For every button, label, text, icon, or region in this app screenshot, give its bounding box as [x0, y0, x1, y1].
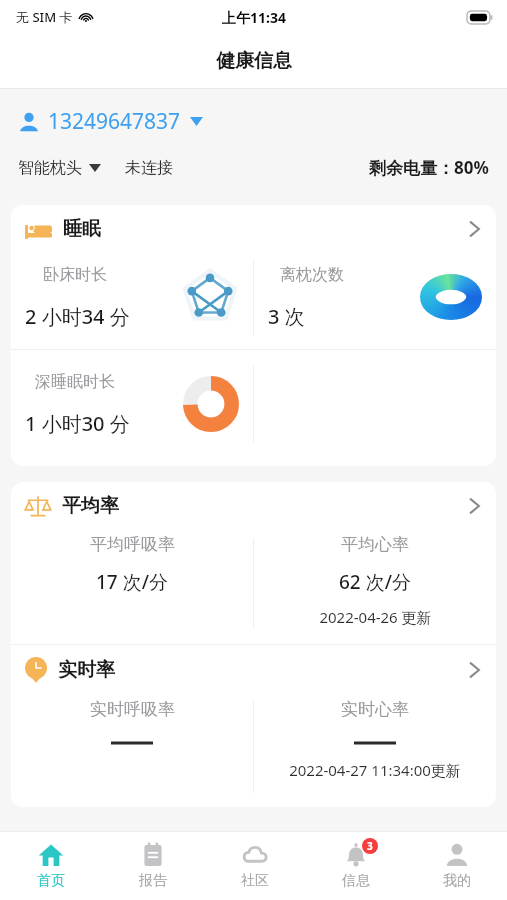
button[interactable]: 平均率: [11, 482, 496, 522]
staticText: 健康信息: [216, 49, 292, 73]
staticText: 2022-04-27 11:34:00更新: [289, 760, 461, 780]
button[interactable]: 报告: [102, 832, 204, 900]
button[interactable]: 离枕次数: [254, 245, 496, 349]
other: 查看详情: [469, 661, 480, 679]
button[interactable]: 社区: [204, 832, 305, 900]
staticText: 实时呼吸率: [90, 699, 175, 720]
staticText: 平均呼吸率: [90, 534, 175, 555]
button[interactable]: 智能枕头: [18, 158, 101, 178]
button[interactable]: 3: [305, 832, 406, 900]
staticText: 平均心率: [341, 534, 409, 555]
staticText: 卧床时长: [43, 265, 107, 285]
button[interactable]: 平均呼吸率: [11, 522, 253, 644]
staticText: 睡眠: [63, 217, 101, 241]
button[interactable]: 实时心率: [254, 687, 496, 807]
staticText: 平均率: [62, 494, 119, 518]
button[interactable]: 卧床时长: [11, 245, 253, 349]
staticText: 我的: [443, 872, 471, 890]
button[interactable]: 实时率: [11, 645, 496, 687]
other: 查看详情: [469, 220, 480, 238]
staticText: 无 SIM 卡: [16, 8, 73, 26]
button[interactable]: 13249647837: [18, 107, 203, 136]
staticText: 未连接: [125, 158, 173, 178]
button[interactable]: 首页: [0, 832, 102, 900]
staticText: 实时心率: [341, 699, 409, 720]
staticText: 报告: [139, 872, 167, 890]
staticText: 深睡眠时长: [35, 372, 115, 392]
staticText: 首页: [37, 872, 65, 890]
staticText: 3 次: [268, 303, 305, 330]
staticText: 3: [367, 839, 373, 853]
staticText: 信息: [342, 872, 370, 890]
staticText: 17 次/分: [96, 569, 168, 595]
staticText: 上午11:34: [222, 8, 286, 27]
button[interactable]: 深睡眠时长: [11, 350, 253, 458]
staticText: 2022-04-26 更新: [319, 607, 432, 627]
button[interactable]: 我的: [406, 832, 507, 900]
button[interactable]: 实时呼吸率: [11, 687, 253, 807]
staticText: 智能枕头: [18, 158, 82, 178]
staticText: 剩余电量：80%: [369, 156, 489, 179]
staticText: 离枕次数: [280, 265, 344, 285]
other: 查看详情: [469, 497, 480, 515]
staticText: 62 次/分: [339, 569, 411, 595]
button[interactable]: 睡眠: [11, 205, 496, 245]
staticText: 1 小时30 分: [25, 410, 130, 437]
staticText: 13249647837: [48, 107, 181, 136]
staticText: 实时率: [58, 658, 115, 682]
staticText: 社区: [241, 872, 269, 890]
button[interactable]: 平均心率: [254, 522, 496, 644]
staticText: 2 小时34 分: [25, 303, 130, 330]
